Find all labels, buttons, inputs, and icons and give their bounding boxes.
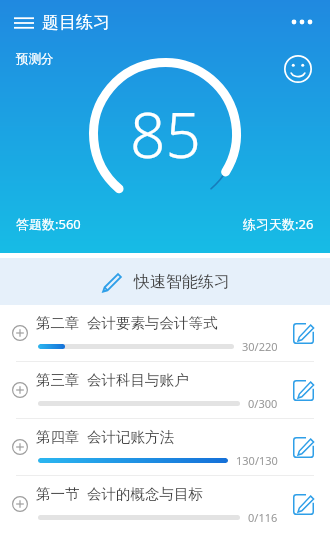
staticText: 第四章 会计记账方法 bbox=[36, 426, 175, 446]
button[interactable]: Edit 第一节 会计的概念与目标 bbox=[286, 487, 320, 521]
button[interactable]: Mood bbox=[280, 51, 316, 87]
staticText: 预测分 bbox=[16, 51, 54, 67]
staticText: 0/300 bbox=[248, 396, 278, 411]
staticText: 0/116 bbox=[248, 510, 278, 525]
button[interactable]: 第四章 会计记账方法 bbox=[0, 419, 330, 475]
button[interactable]: Edit 第二章 会计要素与会计等式 bbox=[286, 316, 320, 350]
button[interactable]: Edit 第三章 会计科目与账户 bbox=[286, 373, 320, 407]
staticText: 130/130 bbox=[236, 453, 278, 468]
button[interactable]: 第一节 会计的概念与目标 bbox=[0, 476, 330, 532]
staticText: 快速智能练习 bbox=[134, 272, 230, 292]
staticText: 第二章 会计要素与会计等式 bbox=[36, 312, 218, 332]
staticText: 题目练习 bbox=[42, 12, 110, 33]
button[interactable]: 快速智能练习 bbox=[0, 258, 330, 305]
staticText: 30/220 bbox=[242, 339, 278, 354]
button[interactable]: Edit 第四章 会计记账方法 bbox=[286, 430, 320, 464]
button[interactable]: 第三章 会计科目与账户 bbox=[0, 362, 330, 418]
staticText: 第一节 会计的概念与目标 bbox=[36, 483, 204, 503]
staticText: 85 bbox=[130, 92, 201, 176]
staticText: 第三章 会计科目与账户 bbox=[36, 369, 189, 389]
button[interactable]: More options bbox=[284, 4, 320, 40]
button[interactable]: 第二章 会计要素与会计等式 bbox=[0, 305, 330, 361]
staticText: 练习天数:26 bbox=[243, 215, 314, 233]
button[interactable]: 题目练习 bbox=[10, 6, 114, 39]
staticText: 答题数:560 bbox=[16, 215, 81, 233]
